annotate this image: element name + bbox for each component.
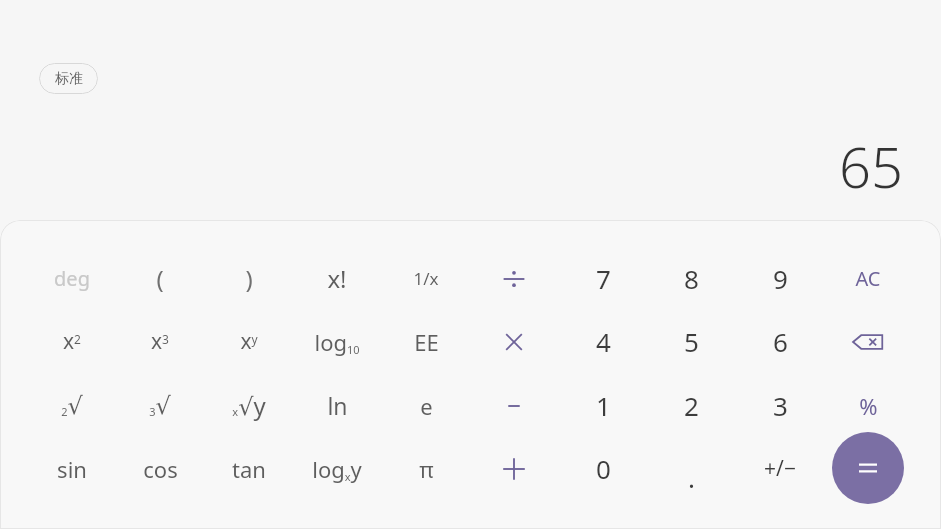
staticText: AC [855,265,881,292]
staticText: 1 [596,388,611,423]
button[interactable]: ln [293,374,381,437]
staticText: . [688,460,695,495]
button[interactable]: Divide [470,247,558,310]
staticText: xy [240,327,258,356]
button[interactable]: 1/x [382,247,470,310]
staticText: EE [414,327,439,357]
staticText: 3√ [149,392,171,420]
staticText: log10 [314,327,360,357]
button[interactable]: log10 [293,310,381,373]
staticText: 8 [684,261,699,296]
button[interactable]: EE [382,310,470,373]
staticText: ) [245,262,253,295]
button[interactable]: x! [293,247,381,310]
staticText: tan [232,454,266,484]
button[interactable]: degrees [28,247,116,310]
staticText: ln [327,390,348,421]
button[interactable]: Backspace [824,310,912,373]
staticText: deg [54,265,90,292]
button[interactable]: 6 [736,310,824,373]
button[interactable]: % [824,374,912,437]
staticText: ( [156,262,164,295]
button[interactable]: Minus [470,374,558,437]
staticText: e [420,391,433,421]
staticText: cos [143,454,178,484]
button[interactable]: Plus [470,437,558,500]
button[interactable]: xy [205,310,293,373]
staticText: 9 [773,261,788,296]
staticText: +/− [764,454,796,483]
button[interactable]: π [382,437,470,500]
button[interactable]: logxy [293,437,381,500]
button[interactable]: +/− [736,437,824,500]
staticText: π [419,454,434,484]
staticText: 3 [773,388,788,423]
staticText: logxy [312,454,362,484]
button[interactable]: 2√ [28,374,116,437]
button[interactable]: Equals [832,432,904,504]
button[interactable]: 1 [559,374,647,437]
button[interactable]: cos [116,437,204,500]
staticText: x√y [232,389,266,422]
button[interactable]: 3√ [116,374,204,437]
button[interactable]: 3 [736,374,824,437]
button[interactable]: sin [28,437,116,500]
button[interactable]: Decimal point [647,437,735,500]
button[interactable]: tan [205,437,293,500]
button[interactable]: x2 [28,310,116,373]
staticText: 5 [684,324,699,359]
button[interactable]: 标准 [39,63,98,94]
staticText: x! [327,262,347,295]
staticText: 7 [596,261,611,296]
staticText: 1/x [413,267,439,290]
staticText: 6 [773,324,788,359]
staticText: 0 [596,451,611,486]
staticText: x2 [63,327,81,356]
staticText: 2 [684,388,699,423]
button[interactable]: ) [205,247,293,310]
button[interactable]: 4 [559,310,647,373]
staticText: % [859,391,878,421]
button[interactable]: 5 [647,310,735,373]
staticText: sin [57,454,87,484]
staticText: 标准 [55,70,83,88]
button[interactable]: x3 [116,310,204,373]
staticText: 4 [596,324,611,359]
button[interactable]: ( [116,247,204,310]
button[interactable]: AC [824,247,912,310]
staticText: 65 [839,128,903,204]
button[interactable]: 7 [559,247,647,310]
button[interactable]: 9 [736,247,824,310]
button[interactable]: 0 [559,437,647,500]
button[interactable]: e [382,374,470,437]
button[interactable]: 8 [647,247,735,310]
staticText: 2√ [61,392,83,420]
staticText: x3 [151,327,169,356]
button[interactable]: 2 [647,374,735,437]
button[interactable]: Multiply [470,310,558,373]
button[interactable]: x√y [205,374,293,437]
